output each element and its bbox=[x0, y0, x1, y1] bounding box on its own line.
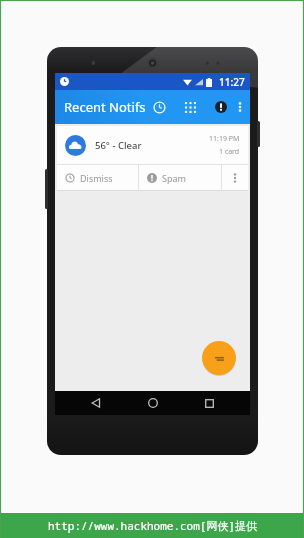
button[interactable]: Recent bbox=[146, 94, 172, 120]
staticText: 1 card bbox=[219, 147, 240, 157]
staticText: Recent Notifs bbox=[64, 98, 146, 116]
button[interactable]: Dismiss bbox=[57, 165, 138, 190]
button[interactable]: Compose bbox=[202, 341, 236, 375]
button[interactable]: Info bbox=[208, 94, 234, 120]
button[interactable]: Back bbox=[81, 391, 111, 415]
staticText: Dismiss bbox=[80, 172, 113, 184]
button[interactable]: More options bbox=[236, 97, 244, 117]
staticText: 56° - Clear bbox=[95, 139, 142, 152]
button[interactable]: Apps bbox=[177, 94, 203, 120]
staticText: 11:19 PM bbox=[209, 134, 240, 144]
button[interactable]: Spam bbox=[139, 165, 221, 190]
button[interactable]: Home bbox=[138, 391, 168, 415]
button[interactable]: 56° - Clear bbox=[57, 126, 248, 164]
button[interactable]: More actions bbox=[222, 165, 248, 190]
staticText: Spam bbox=[162, 172, 186, 184]
button[interactable]: Recents bbox=[194, 391, 224, 415]
staticText: http://www.hackhome.com[网侠]提供 bbox=[48, 518, 257, 533]
staticText: 11:27 bbox=[219, 75, 245, 89]
